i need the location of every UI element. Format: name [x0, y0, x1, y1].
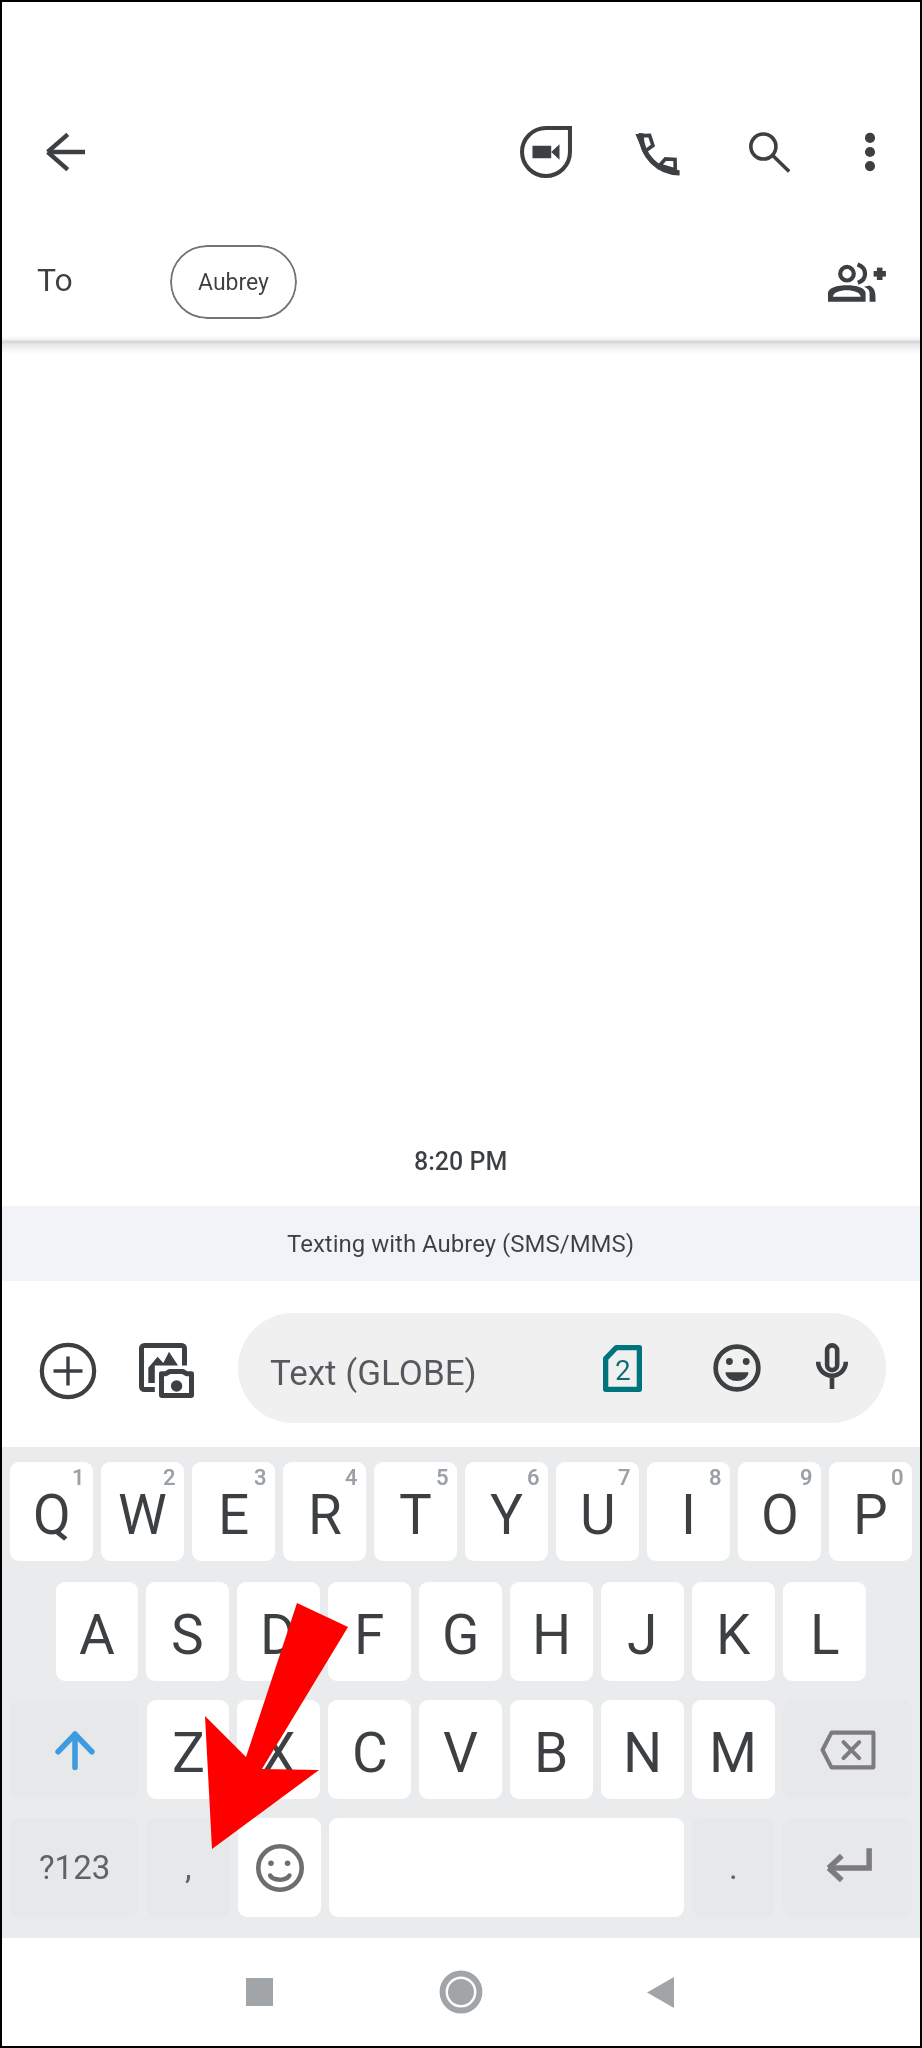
staticText: U	[580, 1483, 616, 1547]
staticText: 1	[72, 1465, 85, 1491]
staticText: X	[261, 1721, 296, 1785]
button[interactable]: .	[692, 1818, 775, 1917]
staticText: 2	[163, 1465, 176, 1491]
staticText: 7	[618, 1465, 631, 1491]
staticText: G	[442, 1603, 480, 1667]
staticText: A	[79, 1603, 115, 1667]
button[interactable]: Back	[616, 1948, 704, 2036]
staticText: 6	[527, 1465, 540, 1491]
button[interactable]: J	[601, 1582, 684, 1681]
button[interactable]: Add people	[813, 239, 901, 327]
button[interactable]: D	[237, 1582, 320, 1681]
button[interactable]: N	[601, 1700, 684, 1799]
button[interactable]: Shift	[10, 1700, 139, 1799]
button[interactable]: T	[374, 1462, 457, 1561]
staticText: J	[627, 1603, 658, 1667]
button[interactable]: H	[510, 1582, 593, 1681]
button[interactable]: Text (GLOBE)	[238, 1313, 886, 1423]
button[interactable]: Home	[417, 1948, 505, 2036]
button[interactable]: P	[829, 1462, 912, 1561]
button[interactable]: C	[328, 1700, 411, 1799]
button[interactable]: B	[510, 1700, 593, 1799]
button[interactable]: A	[56, 1582, 138, 1681]
button[interactable]: Backspace	[783, 1700, 912, 1799]
staticText: 8	[709, 1465, 722, 1491]
staticText: I	[681, 1483, 696, 1547]
staticText: 9	[800, 1465, 813, 1491]
button[interactable]: F	[328, 1582, 411, 1681]
staticText: N	[623, 1721, 663, 1785]
button[interactable]: R	[283, 1462, 366, 1561]
button[interactable]: U	[556, 1462, 639, 1561]
staticText: .	[729, 1848, 738, 1887]
button[interactable]: Emoji	[238, 1818, 321, 1917]
staticText: Text (GLOBE)	[270, 1353, 477, 1394]
staticText: V	[443, 1721, 479, 1785]
staticText: 5	[436, 1465, 449, 1491]
staticText: P	[853, 1483, 888, 1547]
staticText: L	[810, 1603, 840, 1667]
staticText: K	[716, 1603, 751, 1667]
button[interactable]: Add attachment	[24, 1327, 112, 1415]
staticText: 8:20 PM	[414, 1147, 508, 1176]
staticText: Z	[172, 1721, 205, 1785]
staticText: S	[171, 1603, 204, 1667]
button[interactable]: K	[692, 1582, 775, 1681]
button[interactable]: Recents	[215, 1948, 303, 2036]
button[interactable]: ,	[147, 1818, 230, 1917]
button[interactable]: Gallery	[122, 1326, 210, 1414]
button[interactable]: G	[419, 1582, 502, 1681]
button[interactable]: Back	[21, 108, 109, 196]
button[interactable]: V	[419, 1700, 502, 1799]
button[interactable]: W	[101, 1462, 184, 1561]
button[interactable]: Y	[465, 1462, 548, 1561]
button[interactable]: Enter	[783, 1818, 912, 1917]
staticText: ,	[185, 1848, 192, 1887]
staticText: F	[354, 1603, 385, 1667]
button[interactable]: L	[783, 1582, 866, 1681]
button[interactable]: Search	[724, 108, 812, 196]
button[interactable]: Aubrey	[170, 245, 297, 319]
staticText: O	[761, 1483, 799, 1547]
staticText: W	[118, 1483, 167, 1547]
staticText: H	[532, 1603, 572, 1667]
staticText: 4	[345, 1465, 358, 1491]
button[interactable]: S	[146, 1582, 229, 1681]
staticText: D	[260, 1603, 297, 1667]
button[interactable]: O	[738, 1462, 821, 1561]
button[interactable]: Q	[10, 1462, 93, 1561]
staticText: R	[308, 1483, 342, 1547]
staticText: 2	[615, 1354, 631, 1387]
staticText: B	[534, 1721, 569, 1785]
staticText: M	[709, 1721, 758, 1785]
button[interactable]: More options	[826, 108, 914, 196]
button[interactable]: M	[692, 1700, 775, 1799]
staticText: Texting with Aubrey (SMS/MMS)	[287, 1230, 635, 1258]
staticText: Y	[490, 1483, 524, 1547]
button[interactable]: I	[647, 1462, 730, 1561]
staticText: 0	[891, 1465, 904, 1491]
button[interactable]: Emoji	[697, 1328, 777, 1408]
staticText: Aubrey	[198, 269, 269, 296]
staticText: 3	[254, 1465, 267, 1491]
staticText: T	[399, 1483, 432, 1547]
button[interactable]: E	[192, 1462, 275, 1561]
button[interactable]: Voice input	[792, 1326, 872, 1406]
button[interactable]: Video call	[502, 108, 590, 196]
button[interactable]: Z	[147, 1700, 229, 1799]
staticText: To	[37, 261, 73, 299]
staticText: ?123	[39, 1848, 111, 1887]
staticText: C	[352, 1721, 388, 1785]
button[interactable]: ?123	[10, 1818, 139, 1917]
button[interactable]: Call	[614, 108, 702, 196]
button[interactable]: SIM 2	[582, 1328, 662, 1408]
button[interactable]: X	[237, 1700, 320, 1799]
staticText: E	[218, 1483, 250, 1547]
staticText: Q	[33, 1483, 71, 1547]
